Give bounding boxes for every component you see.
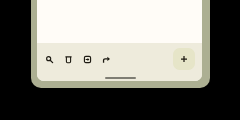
button[interactable]: Search bbox=[40, 49, 59, 69]
button[interactable]: Forward bbox=[97, 49, 116, 69]
button[interactable]: Delete bbox=[59, 49, 78, 69]
button[interactable]: Move to bbox=[78, 49, 97, 69]
button[interactable]: Create bbox=[173, 48, 195, 70]
